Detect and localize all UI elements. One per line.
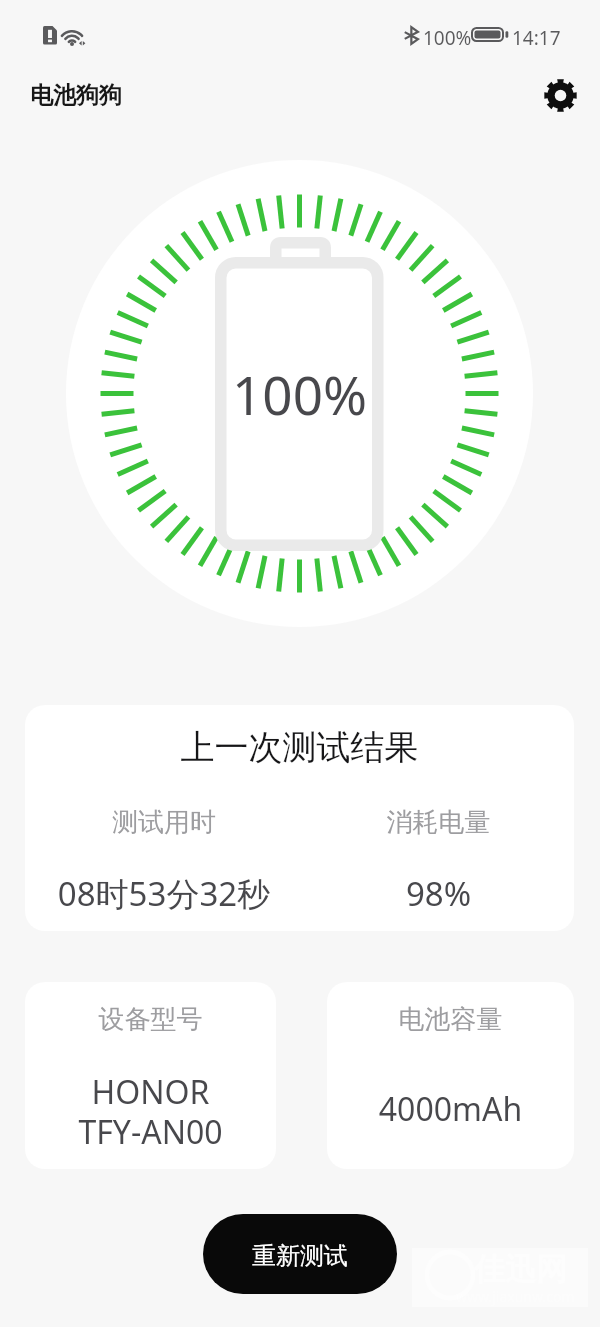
staticText: 98% bbox=[303, 871, 574, 916]
button[interactable]: 上一次测试结果 bbox=[25, 705, 574, 931]
button[interactable]: 设备型号 bbox=[25, 982, 276, 1169]
staticText: 测试用时 bbox=[25, 806, 303, 839]
button[interactable]: 电池容量 bbox=[327, 982, 574, 1169]
staticText: 设备型号 bbox=[25, 1003, 276, 1036]
staticText: 重新测试 bbox=[252, 1241, 348, 1271]
staticText: 100% bbox=[232, 358, 367, 430]
staticText: 电池容量 bbox=[327, 1003, 574, 1036]
button[interactable]: 重新测试 bbox=[203, 1214, 397, 1294]
staticText: 08时53分32秒 bbox=[25, 871, 303, 916]
staticText: HONOR TFY-AN00 bbox=[25, 1070, 276, 1154]
staticText: 100% bbox=[423, 25, 472, 51]
staticText: 14:17 bbox=[512, 25, 561, 51]
button[interactable]: Settings bbox=[538, 73, 582, 117]
staticText: 电池狗狗 bbox=[30, 81, 122, 110]
staticText: 4000mAh bbox=[327, 1087, 574, 1131]
staticText: 上一次测试结果 bbox=[25, 726, 574, 769]
staticText: 消耗电量 bbox=[303, 806, 574, 839]
